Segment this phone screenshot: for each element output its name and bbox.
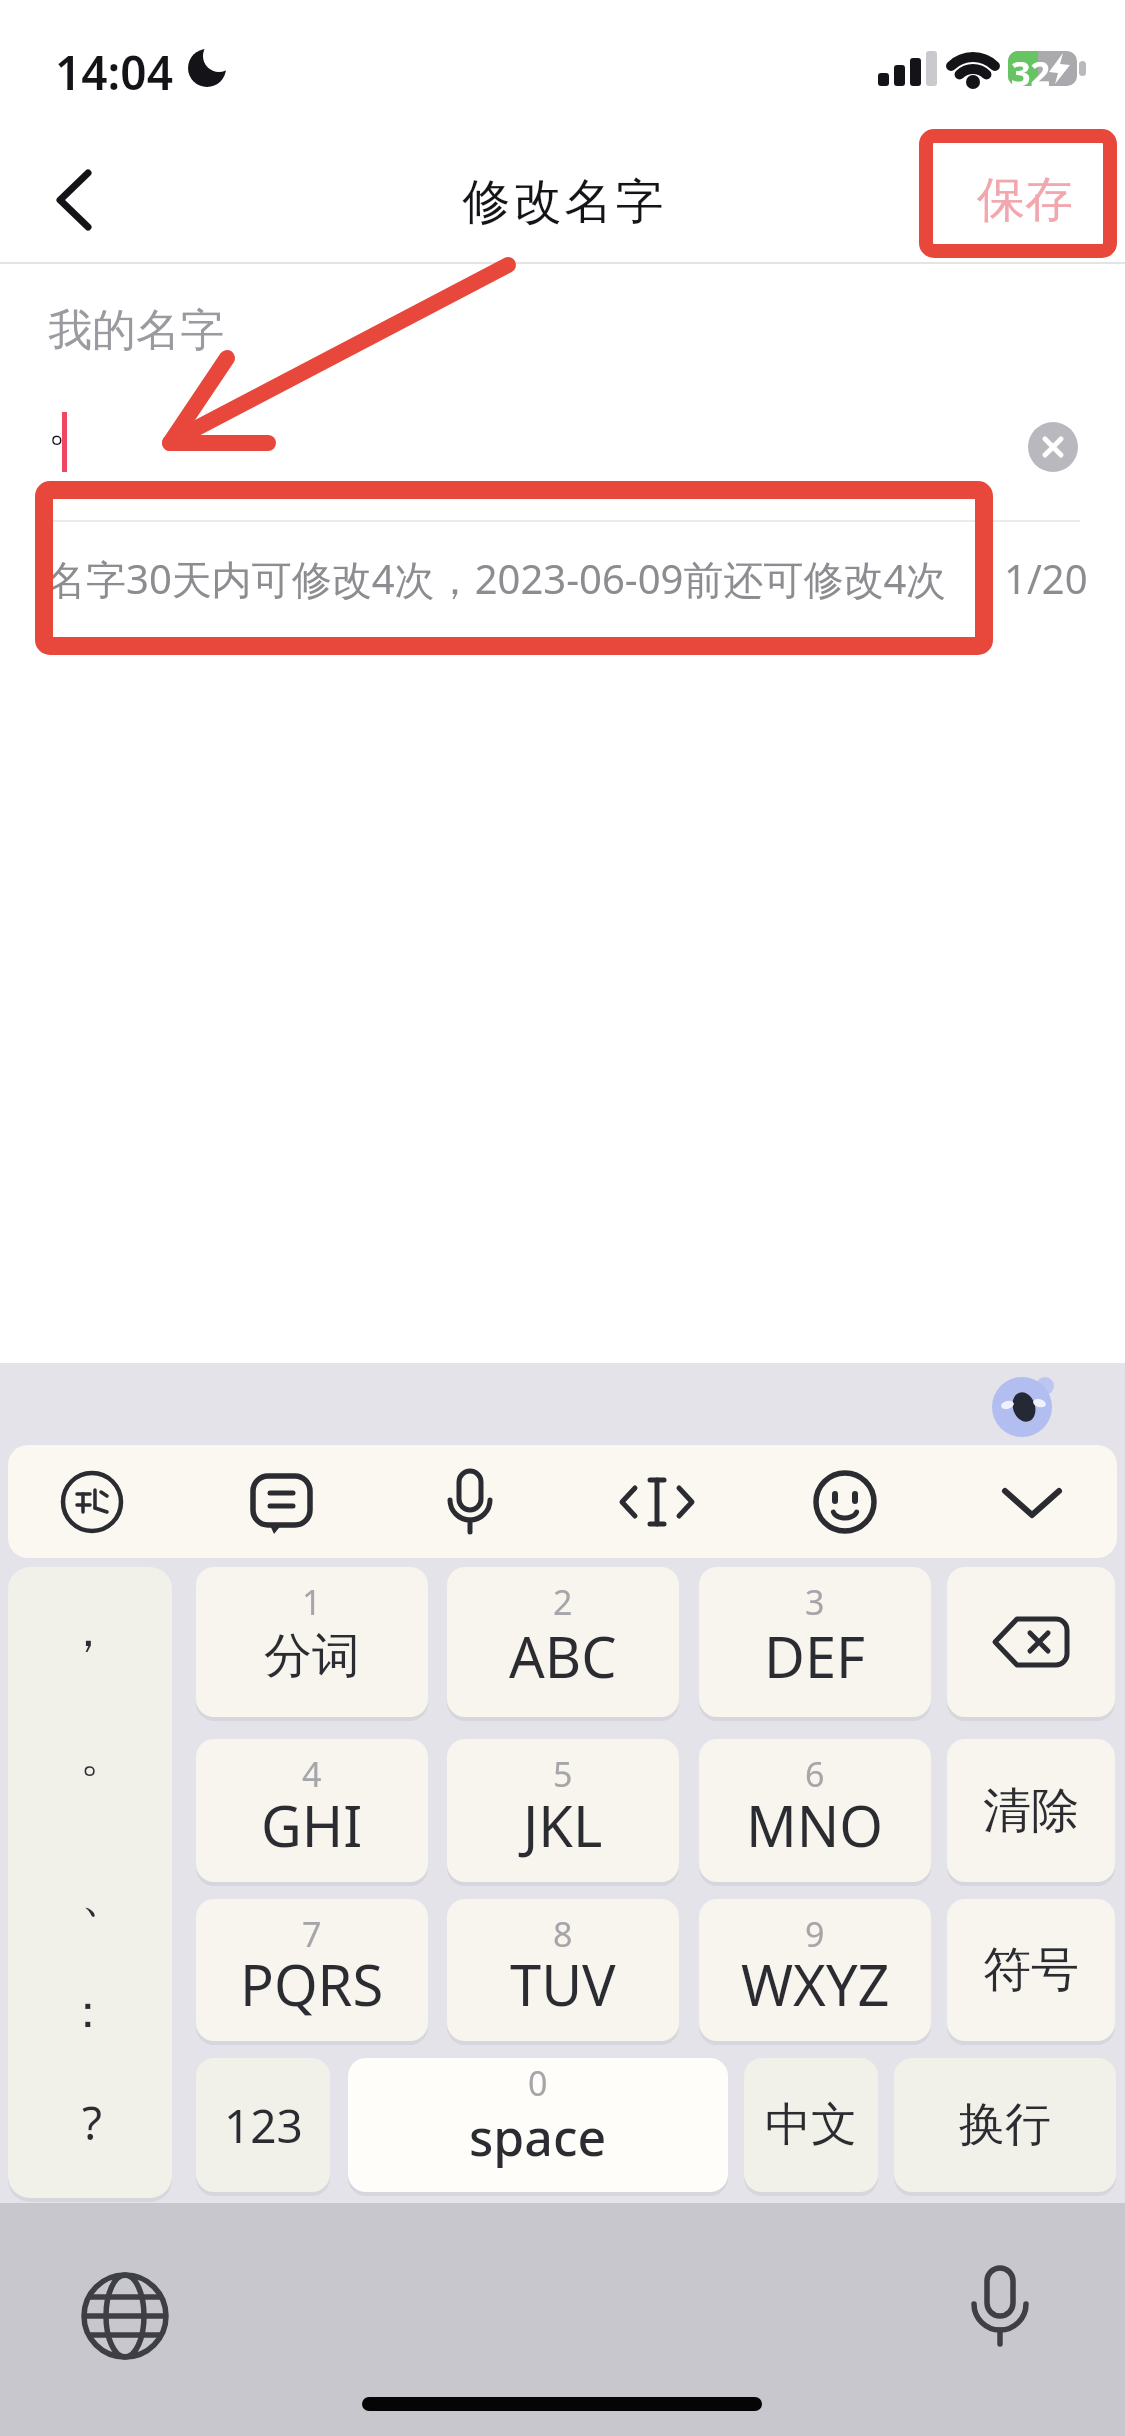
staticText: 换行: [959, 2096, 1051, 2154]
button[interactable]: [30, 160, 120, 240]
staticText: ，: [65, 1602, 111, 1660]
button[interactable]: [617, 1462, 697, 1542]
staticText: DEF: [764, 1618, 866, 1694]
staticText: ：: [65, 1983, 111, 2041]
staticText: 5: [553, 1751, 573, 1797]
button[interactable]: 1: [196, 1567, 428, 1717]
staticText: 4: [302, 1751, 322, 1797]
button[interactable]: [947, 1567, 1115, 1717]
staticText: ?: [82, 2091, 102, 2154]
button[interactable]: [992, 1462, 1072, 1542]
button[interactable]: [430, 1462, 510, 1542]
staticText: 8: [553, 1911, 573, 1957]
button[interactable]: 。: [40, 390, 1000, 500]
button[interactable]: 0: [348, 2058, 728, 2192]
button[interactable]: 符号: [947, 1899, 1115, 2041]
staticText: 修改名字: [461, 172, 665, 232]
button[interactable]: [52, 1462, 132, 1542]
staticText: GHI: [261, 1787, 363, 1863]
staticText: 3: [805, 1579, 825, 1625]
button[interactable]: 123: [196, 2058, 330, 2192]
staticText: 我的名字: [48, 303, 224, 358]
button[interactable]: 8: [447, 1899, 679, 2041]
button[interactable]: 清除: [947, 1739, 1115, 1882]
button[interactable]: 9: [699, 1899, 931, 2041]
staticText: MNO: [746, 1787, 884, 1863]
staticText: 符号: [983, 1940, 1079, 2000]
button[interactable]: 保存: [955, 160, 1095, 240]
button[interactable]: 6: [699, 1739, 931, 1882]
button[interactable]: 5: [447, 1739, 679, 1882]
staticText: 。: [80, 1727, 126, 1785]
staticText: 清除: [983, 1781, 1079, 1841]
staticText: JKL: [523, 1787, 603, 1863]
button[interactable]: 换行: [894, 2058, 1116, 2192]
staticText: 123: [224, 2094, 303, 2157]
staticText: 分词: [264, 1626, 360, 1686]
button[interactable]: [75, 2266, 175, 2366]
staticText: ABC: [509, 1618, 617, 1694]
button[interactable]: 中文: [744, 2058, 878, 2192]
button[interactable]: 2: [447, 1567, 679, 1717]
staticText: 。: [48, 400, 90, 453]
button[interactable]: 7: [196, 1899, 428, 2041]
button[interactable]: [950, 2260, 1050, 2360]
staticText: 32: [1011, 50, 1050, 96]
staticText: TUV: [510, 1946, 616, 2022]
staticText: 14:04: [55, 41, 173, 104]
button[interactable]: [1028, 422, 1078, 472]
button[interactable]: 3: [699, 1567, 931, 1717]
staticText: 中文: [765, 2096, 857, 2154]
staticText: 保存: [977, 170, 1073, 230]
staticText: 9: [805, 1911, 825, 1957]
staticText: 1/20: [1004, 551, 1088, 605]
button[interactable]: ，: [8, 1567, 172, 2198]
staticText: space: [469, 2103, 607, 2171]
staticText: 名字30天内可修改4次，2023-06-09前还可修改4次: [46, 551, 947, 606]
staticText: WXYZ: [741, 1946, 890, 2022]
button[interactable]: 4: [196, 1739, 428, 1882]
staticText: 1: [302, 1579, 322, 1625]
button[interactable]: [805, 1462, 885, 1542]
staticText: 6: [805, 1751, 825, 1797]
button[interactable]: [241, 1462, 321, 1542]
staticText: 0: [528, 2060, 548, 2106]
staticText: 、: [81, 1867, 127, 1925]
staticText: 7: [302, 1911, 322, 1957]
staticText: PQRS: [240, 1946, 384, 2022]
staticText: 2: [553, 1579, 573, 1625]
